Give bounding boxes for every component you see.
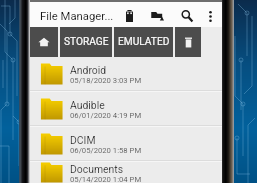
button[interactable]: Home: [30, 27, 58, 57]
staticText: 06/01/2020 4:19 PM: [70, 111, 142, 120]
staticText: 06/05/2020 1:58 PM: [70, 146, 142, 155]
staticText: EMULATED: [118, 36, 170, 48]
button[interactable]: Documents: [30, 162, 222, 183]
staticText: Documents: [70, 163, 124, 175]
button[interactable]: Android: [30, 57, 222, 90]
button[interactable]: USB storage: [118, 5, 140, 27]
staticText: File Manager...: [40, 10, 114, 23]
staticText: 05/18/2020 3:03 PM: [70, 76, 142, 85]
button[interactable]: Audible: [30, 92, 222, 125]
button[interactable]: DCIM: [30, 127, 222, 160]
button[interactable]: STORAGE: [60, 27, 112, 57]
button[interactable]: New folder: [146, 5, 168, 27]
staticText: Audible: [70, 99, 105, 111]
staticText: DCIM: [70, 134, 96, 146]
button[interactable]: More options: [199, 5, 221, 27]
button[interactable]: EMULATED: [114, 27, 173, 57]
button[interactable]: Delete: [175, 27, 201, 57]
staticText: 05/14/2020 1:04 PM: [70, 175, 142, 183]
staticText: Android: [70, 64, 107, 76]
button[interactable]: Search: [176, 5, 198, 27]
staticText: STORAGE: [64, 36, 109, 48]
